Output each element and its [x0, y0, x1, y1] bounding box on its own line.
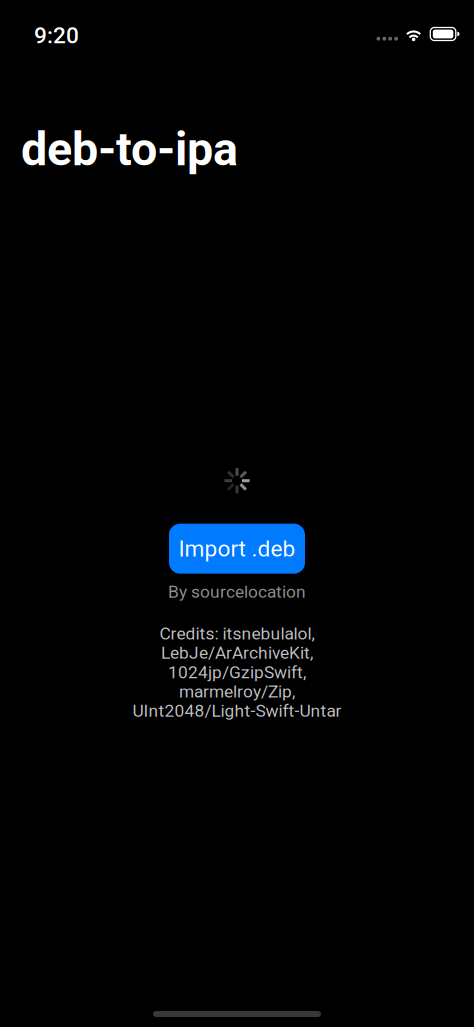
staticText: deb-to-ipa: [21, 122, 238, 177]
staticText: By sourcelocation: [168, 582, 306, 602]
staticText: 9:20: [34, 22, 79, 49]
button[interactable]: Import .deb: [169, 524, 305, 574]
staticText: 1024jp/GzipSwift,: [168, 662, 306, 682]
staticText: marmelroy/Zip,: [179, 681, 295, 702]
staticText: UInt2048/Light-Swift-Untar: [132, 701, 341, 721]
staticText: LebJe/ArArchiveKit,: [161, 643, 313, 663]
staticText: Import .deb: [178, 535, 295, 562]
staticText: Credits: itsnebulalol,: [159, 623, 314, 644]
